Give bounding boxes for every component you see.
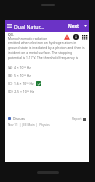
staticText: (C) 1.6 × 10¹⁵ Hz	[8, 81, 34, 86]
staticText: (D) 2.5 × 10¹⁵ Hz	[8, 89, 35, 94]
button[interactable]: (C) 1.6 × 10¹⁵ Hz	[8, 79, 86, 87]
staticText: Q3.	[8, 32, 14, 37]
button[interactable]: More options	[81, 20, 89, 32]
button[interactable]: (A) 4 × 10¹⁵ Hz	[8, 63, 86, 71]
staticText: Next	[68, 23, 80, 29]
button[interactable]: Info	[72, 33, 79, 41]
staticText: Nov 11 | JEE Main | Physics	[8, 123, 50, 127]
button[interactable]: Next	[67, 23, 81, 29]
staticText: emitted when electron on hydrogen atom i…	[8, 40, 86, 60]
staticText: (A) 4 × 10¹⁵ Hz	[8, 65, 31, 70]
button[interactable]: (D) 2.5 × 10¹⁵ Hz	[8, 87, 86, 95]
button[interactable]: Report	[72, 117, 86, 121]
staticText: Discuss	[13, 116, 25, 121]
staticText: Monochromatic radiation	[8, 36, 48, 40]
button[interactable]: Report error	[63, 33, 70, 41]
button[interactable]: (B) 5 × 10¹⁵ Hz	[8, 71, 86, 79]
staticText: (B) 5 × 10¹⁵ Hz	[8, 73, 31, 78]
staticText: Report	[72, 117, 82, 121]
button[interactable]: All questions	[81, 33, 88, 41]
button[interactable]: Discuss	[8, 116, 25, 121]
staticText: Dual Natur...	[14, 23, 45, 30]
button[interactable]: Menu	[5, 20, 14, 32]
